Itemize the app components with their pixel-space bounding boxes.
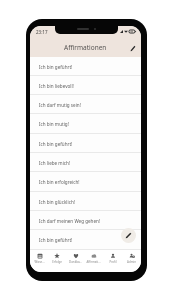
button[interactable]: Profil <box>103 250 122 272</box>
button[interactable]: Ich darf meinen Weg gehen! <box>30 211 141 230</box>
button[interactable]: Ich bin geführt! <box>30 230 141 250</box>
staticText: 23:17 <box>36 29 48 35</box>
button[interactable]: Ich bin erfolgreich! <box>30 172 141 192</box>
button[interactable]: Ich bin liebevoll! <box>30 76 141 95</box>
button[interactable]: Ich darf mutig sein! <box>30 95 141 114</box>
staticText: Ich darf mutig sein! <box>39 102 81 108</box>
button[interactable]: Dankba... <box>66 250 84 272</box>
staticText: Ich bin geführt! <box>39 237 73 243</box>
staticText: Wisse... <box>34 260 45 264</box>
staticText: Dankba... <box>69 260 82 264</box>
staticText: Profil <box>109 260 117 264</box>
button[interactable]: Ich bin geführt! <box>30 134 141 153</box>
staticText: Affirmati... <box>86 260 101 264</box>
staticText: Ich bin liebevoll! <box>39 83 74 89</box>
staticText: Ich darf meinen Weg gehen! <box>39 218 101 224</box>
button[interactable]: Affirmati... <box>84 250 103 272</box>
button[interactable]: Ich bin mutig! <box>30 114 141 134</box>
button[interactable]: Add affirmation <box>121 228 136 243</box>
button[interactable]: Edit <box>128 43 138 53</box>
button[interactable]: Ich bin glücklich! <box>30 192 141 211</box>
button[interactable]: Ich bin geführt! <box>30 57 141 76</box>
button[interactable]: Erfolge <box>48 250 66 272</box>
staticText: Erfolge <box>52 260 62 264</box>
staticText: Ich bin glücklich! <box>39 199 75 205</box>
staticText: Ich bin geführt! <box>39 64 73 70</box>
button[interactable]: Wisse... <box>30 250 48 272</box>
button[interactable]: Admin <box>122 250 141 272</box>
staticText: Ich bin geführt! <box>39 141 73 147</box>
staticText: Ich bin mutig! <box>39 121 69 127</box>
staticText: Ich liebe mich! <box>39 160 71 166</box>
staticText: Admin <box>127 260 136 264</box>
staticText: Affirmationen <box>64 43 107 52</box>
staticText: Ich bin erfolgreich! <box>39 179 80 185</box>
button[interactable]: Ich liebe mich! <box>30 153 141 172</box>
